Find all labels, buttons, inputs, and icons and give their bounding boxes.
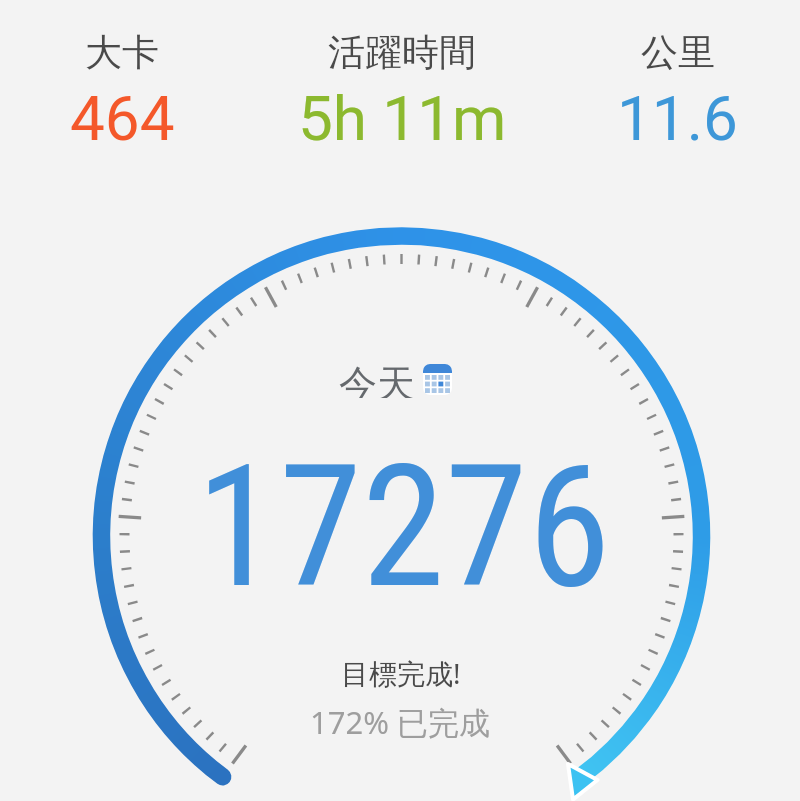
button[interactable]: 11.6: [527, 73, 800, 163]
button[interactable]: 5h 11m: [252, 73, 552, 163]
staticText: 公里: [641, 29, 715, 76]
staticText: 17276: [196, 429, 611, 626]
button[interactable]: 464: [0, 73, 272, 163]
staticText: 今天: [339, 360, 415, 398]
staticText: 大卡: [85, 29, 159, 76]
button[interactable]: 今天: [339, 360, 452, 398]
staticText: 活躍時間: [328, 29, 476, 76]
staticText: 172% 已完成: [310, 701, 491, 743]
button[interactable]: 大卡: [0, 12, 272, 92]
staticText: 5h 11m: [298, 82, 507, 155]
staticText: 464: [70, 82, 175, 155]
staticText: 目標完成!: [341, 654, 461, 692]
staticText: 11.6: [617, 82, 738, 155]
button[interactable]: 17276: [103, 427, 703, 627]
